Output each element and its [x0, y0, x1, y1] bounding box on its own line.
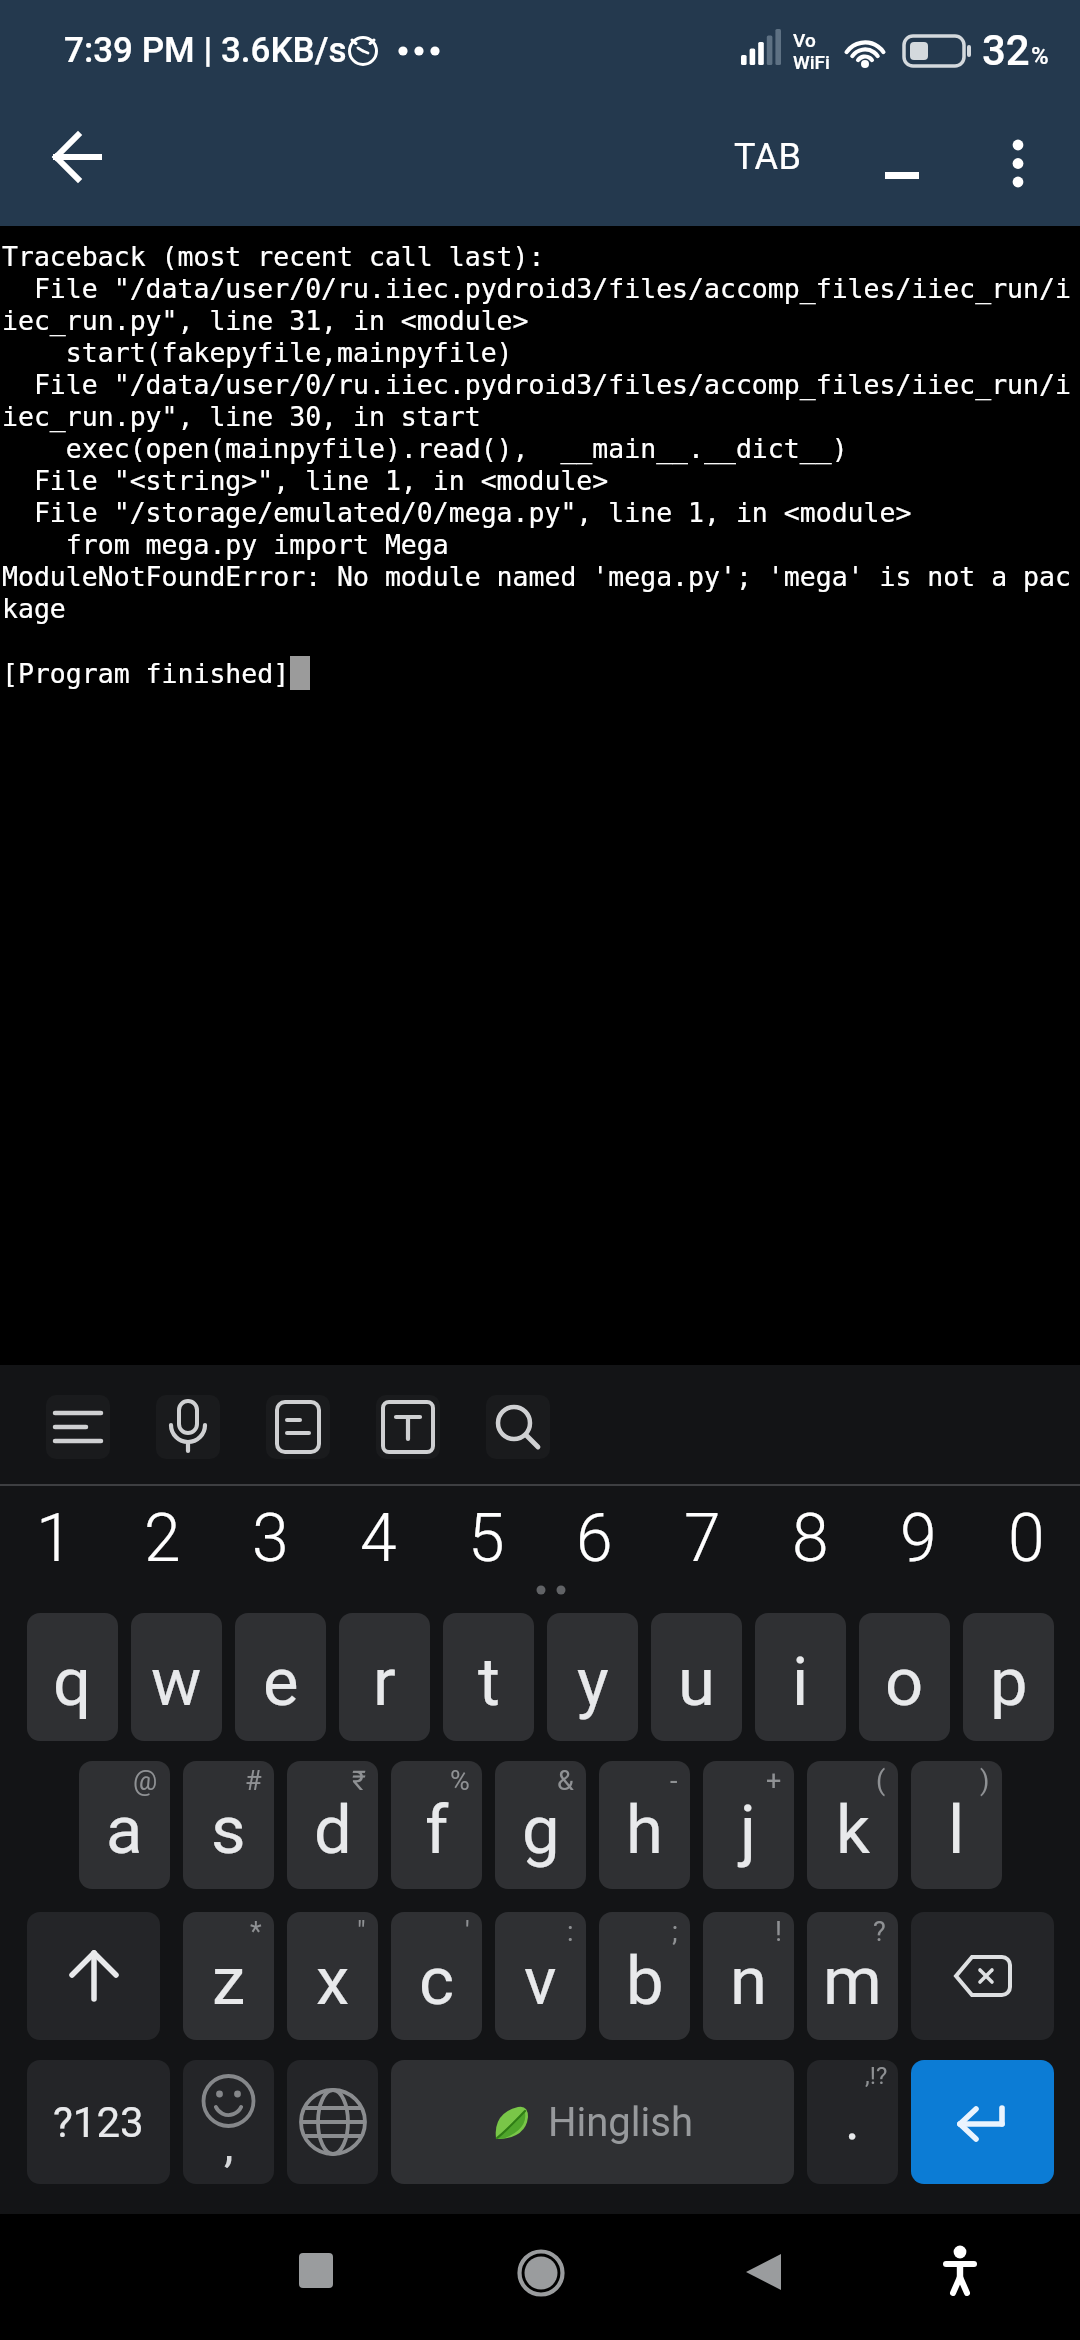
button[interactable]: 8: [756, 1498, 864, 1578]
button[interactable]: 0: [972, 1498, 1080, 1578]
button[interactable]: [363, 1382, 453, 1472]
button[interactable]: y: [547, 1613, 638, 1741]
button[interactable]: q: [27, 1613, 118, 1741]
button[interactable]: w: [131, 1613, 222, 1741]
staticText: p: [990, 1643, 1028, 1722]
staticText: +: [766, 1765, 782, 1797]
staticText: TAB: [734, 136, 802, 178]
button[interactable]: x: [287, 1912, 378, 2040]
button[interactable]: [911, 1912, 1054, 2040]
button[interactable]: i: [755, 1613, 846, 1741]
button[interactable]: n: [703, 1912, 794, 2040]
staticText: from mega.py import Mega: [2, 529, 449, 560]
button[interactable]: l: [911, 1761, 1002, 1889]
button[interactable]: a: [79, 1761, 170, 1889]
staticText: e: [263, 1643, 299, 1722]
button[interactable]: [866, 152, 938, 202]
staticText: %: [1031, 42, 1049, 70]
button[interactable]: z: [183, 1912, 274, 2040]
staticText: 8: [792, 1500, 829, 1577]
button[interactable]: 6: [540, 1498, 648, 1578]
staticText: %: [450, 1765, 470, 1797]
staticText: 32: [982, 26, 1030, 75]
staticText: 0: [1008, 1500, 1045, 1577]
button[interactable]: o: [859, 1613, 950, 1741]
staticText: start(fakepyfile,mainpyfile): [2, 337, 513, 368]
staticText: WiFi: [793, 51, 830, 73]
button[interactable]: [28, 107, 128, 219]
staticText: 6: [576, 1500, 613, 1577]
button[interactable]: Hinglish: [391, 2060, 794, 2184]
staticText: File "/storage/emulated/0/mega.py", line…: [2, 497, 912, 528]
button[interactable]: c: [391, 1912, 482, 2040]
staticText: o: [885, 1643, 924, 1722]
button[interactable]: d: [287, 1761, 378, 1889]
button[interactable]: [473, 1382, 563, 1472]
staticText: u: [678, 1643, 715, 1722]
staticText: #: [245, 1765, 262, 1797]
staticText: g: [522, 1791, 560, 1870]
button[interactable]: 9: [864, 1498, 972, 1578]
button[interactable]: k: [807, 1761, 898, 1889]
button[interactable]: [27, 1912, 160, 2040]
button[interactable]: [299, 2253, 333, 2288]
button[interactable]: e: [235, 1613, 326, 1741]
staticText: iec_run.py", line 30, in start: [2, 401, 481, 432]
button[interactable]: [973, 100, 1063, 226]
button[interactable]: .: [807, 2060, 898, 2184]
staticText: 7: [684, 1500, 721, 1577]
staticText: 7:39 PM | 3.6KB/s: [64, 30, 347, 71]
button[interactable]: h: [599, 1761, 690, 1889]
button[interactable]: j: [703, 1761, 794, 1889]
button[interactable]: [743, 2254, 783, 2291]
button[interactable]: r: [339, 1613, 430, 1741]
button[interactable]: 1: [0, 1498, 108, 1578]
staticText: (: [876, 1765, 886, 1797]
staticText: :: [567, 1916, 574, 1948]
staticText: a: [106, 1791, 143, 1870]
button[interactable]: [33, 1382, 123, 1472]
staticText: ": [357, 1916, 366, 1948]
button[interactable]: [143, 1382, 233, 1472]
staticText: k: [836, 1791, 870, 1870]
button[interactable]: v: [495, 1912, 586, 2040]
staticText: ?123: [53, 2098, 144, 2147]
button[interactable]: [934, 2244, 986, 2310]
button[interactable]: m: [807, 1912, 898, 2040]
staticText: kage: [2, 593, 66, 624]
button[interactable]: [911, 2060, 1054, 2184]
staticText: l: [948, 1791, 965, 1870]
staticText: x: [316, 1942, 350, 2021]
staticText: m: [823, 1942, 882, 2021]
button[interactable]: f: [391, 1761, 482, 1889]
button[interactable]: b: [599, 1912, 690, 2040]
staticText: 9: [900, 1500, 937, 1577]
button[interactable]: ?123: [27, 2060, 170, 2184]
button[interactable]: [253, 1382, 343, 1472]
button[interactable]: u: [651, 1613, 742, 1741]
staticText: c: [419, 1942, 455, 2021]
staticText: @: [133, 1765, 158, 1797]
staticText: File "/data/user/0/ru.iiec.pydroid3/file…: [2, 369, 1071, 400]
staticText: q: [53, 1643, 92, 1722]
staticText: Hinglish: [548, 2099, 693, 2146]
button[interactable]: 3: [216, 1498, 324, 1578]
button[interactable]: [516, 2248, 566, 2298]
staticText: ;: [672, 1916, 678, 1948]
button[interactable]: p: [963, 1613, 1054, 1741]
staticText: .: [845, 2087, 860, 2153]
button[interactable]: 7: [648, 1498, 756, 1578]
button[interactable]: g: [495, 1761, 586, 1889]
button[interactable]: ,: [183, 2060, 274, 2184]
button[interactable]: s: [183, 1761, 274, 1889]
staticText: f: [425, 1791, 449, 1870]
staticText: -: [670, 1765, 678, 1797]
button[interactable]: 5: [432, 1498, 540, 1578]
button[interactable]: 2: [108, 1498, 216, 1578]
staticText: 2: [144, 1500, 181, 1577]
button[interactable]: t: [443, 1613, 534, 1741]
staticText: ,: [224, 2116, 234, 2172]
button[interactable]: 4: [324, 1498, 432, 1578]
staticText: h: [626, 1791, 663, 1870]
button[interactable]: [287, 2060, 378, 2184]
